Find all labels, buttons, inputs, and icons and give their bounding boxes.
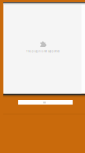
- staticText: This plugin is not supported: [26, 50, 60, 53]
